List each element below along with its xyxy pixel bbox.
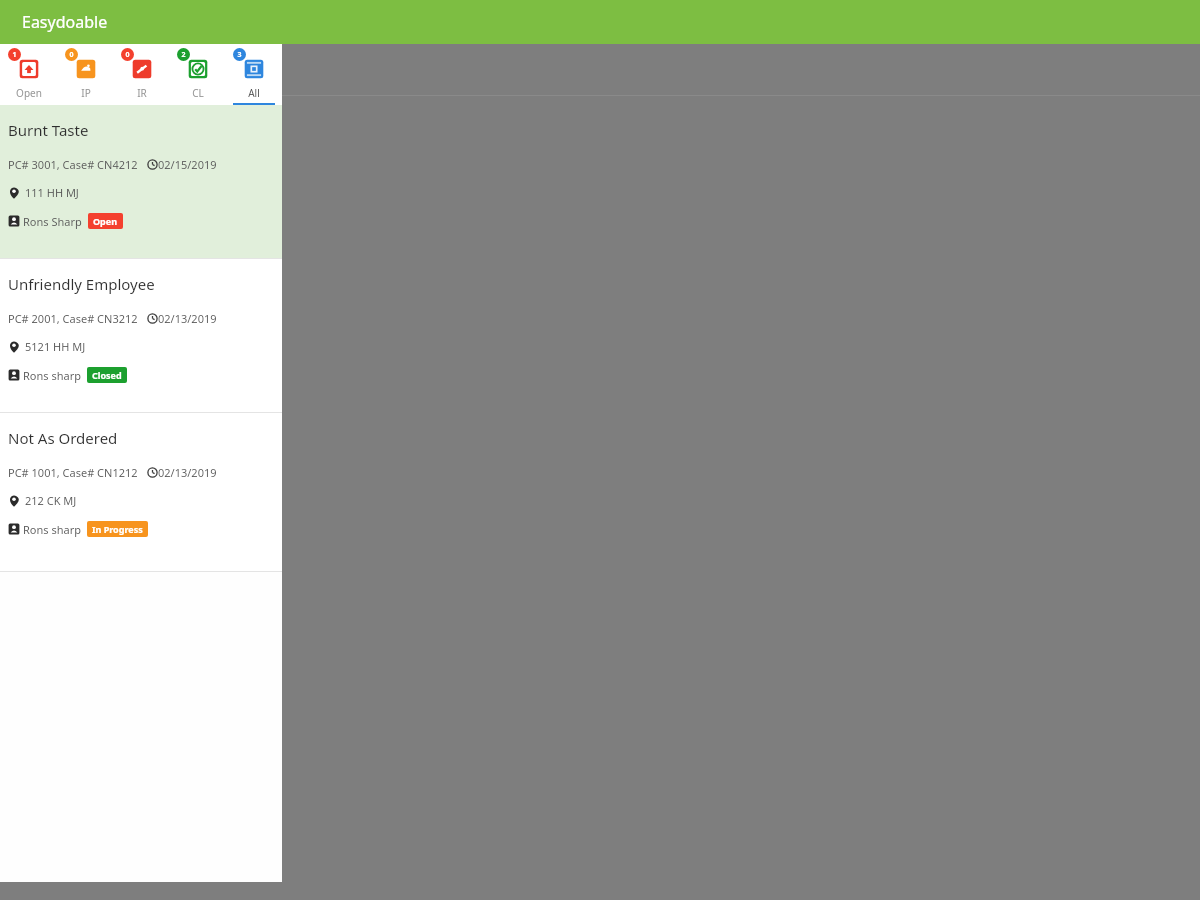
staticText: 0	[69, 50, 74, 60]
staticText: Open	[16, 86, 42, 100]
staticText: 5121 HH MJ	[25, 339, 86, 354]
staticText: Rons Sharp	[23, 214, 82, 229]
staticText: In Progress	[92, 523, 143, 535]
button[interactable]: Burnt Taste	[0, 105, 282, 258]
button[interactable]: Not As Ordered	[0, 413, 282, 571]
staticText: Rons sharp	[23, 368, 81, 383]
staticText: Open	[93, 215, 118, 227]
staticText: Not As Ordered	[8, 428, 118, 448]
staticText: IR	[137, 86, 147, 100]
button[interactable]: IR	[114, 44, 170, 105]
staticText: 212 CK MJ	[25, 493, 77, 508]
staticText: 0	[125, 50, 130, 60]
staticText: IP	[81, 86, 91, 100]
button[interactable]: Unfriendly Employee	[0, 259, 282, 412]
staticText: PC# 3001, Case# CN4212	[8, 157, 138, 172]
staticText: Burnt Taste	[8, 120, 89, 140]
staticText: Easydoable	[22, 11, 108, 33]
staticText: 111 HH MJ	[25, 185, 79, 200]
button[interactable]: IP	[57, 44, 114, 105]
staticText: Unfriendly Employee	[8, 274, 155, 294]
staticText: PC# 1001, Case# CN1212	[8, 465, 138, 480]
staticText: PC# 2001, Case# CN3212	[8, 311, 138, 326]
staticText: 02/13/2019	[158, 311, 217, 326]
staticText: CL	[192, 86, 204, 100]
button[interactable]: CL	[170, 44, 226, 105]
staticText: 02/13/2019	[158, 465, 217, 480]
button[interactable]: All	[226, 44, 282, 105]
button[interactable]: Open	[0, 44, 57, 105]
staticText: 02/15/2019	[158, 157, 217, 172]
staticText: All	[248, 86, 260, 100]
staticText: Closed	[92, 369, 122, 381]
staticText: 2	[181, 50, 186, 60]
staticText: 1	[12, 50, 17, 60]
staticText: Rons sharp	[23, 522, 81, 537]
staticText: 3	[237, 50, 242, 60]
